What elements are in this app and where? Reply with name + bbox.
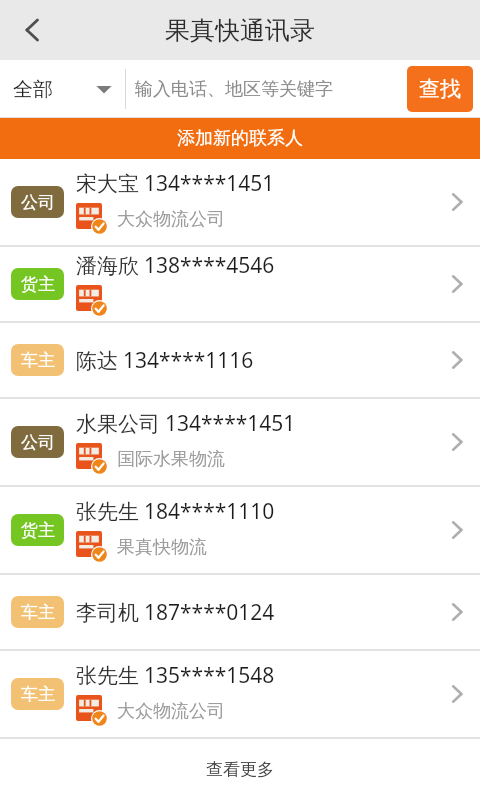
staticText: 添加新的联系人	[177, 127, 303, 150]
staticText: 潘海欣	[76, 253, 139, 279]
staticText: 货主	[21, 274, 55, 295]
staticText: 135****1548	[144, 661, 275, 690]
button[interactable]: 车主	[0, 323, 480, 397]
button[interactable]: 公司	[0, 159, 480, 245]
button[interactable]: 查找	[407, 66, 473, 112]
staticText: 李司机	[76, 600, 139, 626]
staticText: 187****0124	[144, 598, 275, 627]
staticText: 宋大宝	[76, 171, 139, 197]
staticText: 134****1451	[144, 169, 275, 198]
staticText: 水果公司	[76, 411, 160, 437]
staticText: 输入电话、地区等关键字	[135, 78, 333, 101]
button[interactable]: 车主	[0, 651, 480, 737]
staticText: 陈达	[76, 348, 118, 374]
button[interactable]: 添加新的联系人	[0, 118, 480, 159]
button[interactable]: 输入电话、地区等关键字	[126, 60, 407, 118]
staticText: 大众物流公司	[117, 208, 225, 231]
staticText: 184****1110	[144, 497, 275, 526]
staticText: 货主	[21, 520, 55, 541]
button[interactable]: 车主	[0, 575, 480, 649]
staticText: 公司	[21, 432, 55, 453]
button[interactable]: 公司	[0, 399, 480, 485]
staticText: 134****1116	[123, 346, 254, 375]
staticText: 查看更多	[206, 759, 274, 780]
staticText: 大众物流公司	[117, 700, 225, 723]
button[interactable]: 查看更多	[0, 739, 480, 800]
staticText: 查找	[419, 76, 461, 102]
button[interactable]: 货主	[0, 247, 480, 321]
button[interactable]: Back	[0, 0, 66, 60]
button[interactable]: 全部	[0, 60, 125, 118]
staticText: 张先生	[76, 663, 139, 689]
staticText: 车主	[21, 684, 55, 705]
staticText: 138****4546	[144, 251, 275, 280]
staticText: 果真快通讯录	[165, 15, 315, 46]
staticText: 果真快物流	[117, 536, 207, 559]
staticText: 车主	[21, 602, 55, 623]
staticText: 张先生	[76, 499, 139, 525]
staticText: 车主	[21, 350, 55, 371]
staticText: 全部	[13, 77, 53, 102]
staticText: 国际水果物流	[117, 448, 225, 471]
button[interactable]: 货主	[0, 487, 480, 573]
staticText: 134****1451	[165, 409, 296, 438]
staticText: 公司	[21, 192, 55, 213]
